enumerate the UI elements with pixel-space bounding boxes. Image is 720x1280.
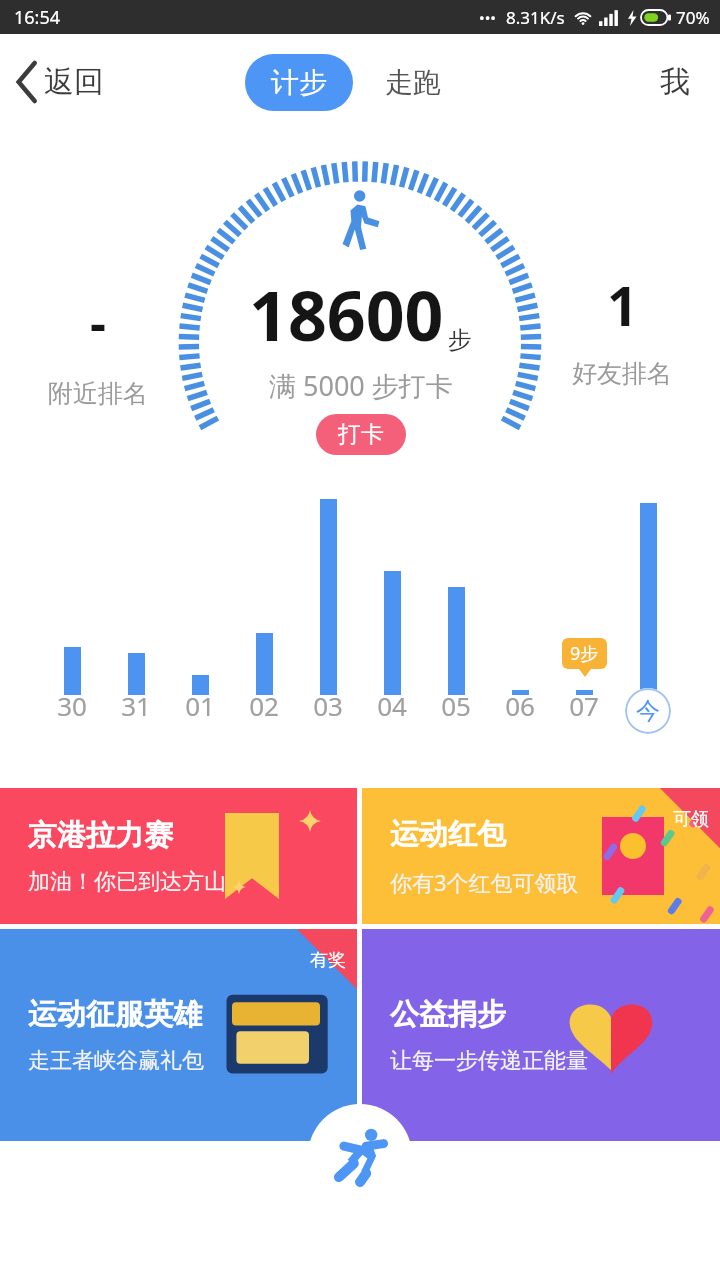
button[interactable]: 打卡 [316, 414, 406, 455]
staticText: 运动红包 [390, 816, 506, 853]
staticText: 18600 [249, 268, 444, 361]
staticText: 你有3个红包可领取 [390, 867, 579, 897]
staticText: 30 [57, 688, 87, 723]
staticText: 70% [676, 6, 710, 29]
staticText: 02 [249, 688, 279, 723]
button[interactable]: 今 [625, 688, 671, 734]
button[interactable]: 返回 [16, 63, 104, 101]
staticText: 01 [185, 688, 215, 723]
staticText: - [90, 288, 106, 356]
staticText: 07 [569, 688, 599, 723]
button[interactable]: Start running [308, 1104, 412, 1208]
staticText: 04 [377, 688, 407, 723]
button[interactable]: 我 [652, 55, 698, 109]
staticText: 03 [313, 688, 343, 723]
staticText: 运动征服英雄 [28, 996, 202, 1033]
staticText: 我 [660, 63, 690, 101]
staticText: 满 5000 步打卡 [269, 367, 453, 404]
staticText: 1 [607, 268, 638, 342]
staticText: 05 [441, 688, 471, 723]
staticText: 让每一步传递正能量 [390, 1047, 588, 1075]
button[interactable]: 运动征服英雄 [0, 929, 357, 1141]
staticText: 可领 [673, 808, 709, 831]
button[interactable] [640, 503, 657, 695]
button[interactable]: 公益捐步 [362, 929, 720, 1141]
button[interactable]: 走跑 [375, 54, 451, 111]
staticText: 走王者峡谷赢礼包 [28, 1047, 204, 1075]
staticText: 8.31K/s [506, 6, 565, 29]
staticText: 31 [121, 688, 151, 723]
staticText: 打卡 [338, 420, 384, 449]
staticText: 公益捐步 [390, 996, 506, 1033]
button[interactable]: 运动红包 [362, 788, 720, 924]
button[interactable]: 京港拉力赛 [0, 788, 357, 924]
button[interactable]: 计步 [245, 54, 353, 111]
staticText: 计步 [271, 65, 327, 100]
staticText: ••• [479, 8, 496, 28]
staticText: 好友排名 [572, 358, 672, 389]
staticText: 06 [505, 688, 535, 723]
staticText: 16:54 [14, 5, 61, 30]
staticText: 步 [448, 325, 472, 355]
staticText: 走跑 [385, 65, 441, 100]
staticText: 加油！你已到达方山 [28, 868, 226, 896]
staticText: 今 [636, 696, 660, 726]
staticText: 有奖 [310, 949, 346, 972]
staticText: 9步 [570, 641, 599, 666]
staticText: 京港拉力赛 [28, 817, 173, 854]
staticText: 返回 [44, 63, 104, 101]
staticText: 附近排名 [48, 378, 148, 409]
